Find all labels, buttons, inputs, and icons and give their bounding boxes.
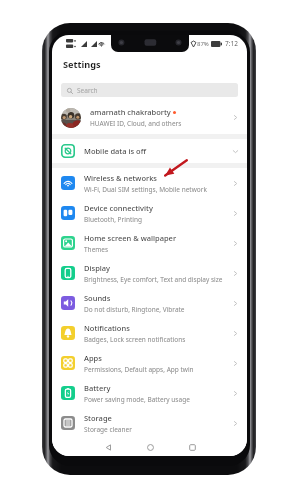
staticText: Mobile data is off	[84, 146, 147, 156]
staticText: Device connectivity	[84, 203, 153, 213]
staticText: Wireless & networks	[84, 173, 157, 183]
staticText: amarnath chakraborty	[90, 107, 171, 117]
button[interactable]: Back	[100, 439, 116, 455]
button[interactable]: Storage	[52, 408, 247, 438]
staticText: Themes	[84, 245, 109, 254]
staticText: Storage	[84, 413, 112, 423]
button[interactable]: Recents	[184, 439, 200, 455]
button[interactable]: Sounds	[52, 288, 247, 318]
staticText: Badges, Lock screen notifications	[84, 335, 186, 344]
button[interactable]: Notifications	[52, 318, 247, 348]
staticText: Home screen & wallpaper	[84, 233, 177, 243]
staticText: Storage cleaner	[84, 425, 132, 434]
staticText: Settings	[63, 58, 101, 71]
button[interactable]: Display	[52, 258, 247, 288]
staticText: Power saving mode, Battery usage	[84, 395, 190, 404]
button[interactable]: Home screen & wallpaper	[52, 228, 247, 258]
staticText: Wi-Fi, Dual SIM settings, Mobile network	[84, 185, 207, 194]
button[interactable]: Wireless & networks	[52, 168, 247, 198]
staticText: Notifications	[84, 323, 130, 333]
staticText: HUAWEI ID, Cloud, and others	[90, 119, 182, 128]
button[interactable]: Battery	[52, 378, 247, 408]
staticText: Sounds	[84, 293, 111, 303]
button[interactable]: amarnath chakraborty	[52, 101, 247, 134]
staticText: Search	[77, 86, 98, 95]
staticText: 7:12	[225, 39, 238, 48]
button[interactable]: Apps	[52, 348, 247, 378]
staticText: Brightness, Eye comfort, Text and displa…	[84, 275, 223, 284]
staticText: Display	[84, 263, 111, 273]
staticText: 87%	[197, 40, 209, 48]
staticText: Bluetooth, Printing	[84, 215, 142, 224]
button[interactable]: Device connectivity	[52, 198, 247, 228]
button[interactable]: Search	[61, 83, 238, 97]
button[interactable]: Home	[142, 439, 158, 455]
staticText: Battery	[84, 383, 111, 393]
button[interactable]: Mobile data is off	[52, 139, 247, 163]
staticText: Permissions, Default apps, App twin	[84, 365, 194, 374]
staticText: Do not disturb, Ringtone, Vibrate	[84, 305, 185, 314]
staticText: Apps	[84, 353, 102, 363]
